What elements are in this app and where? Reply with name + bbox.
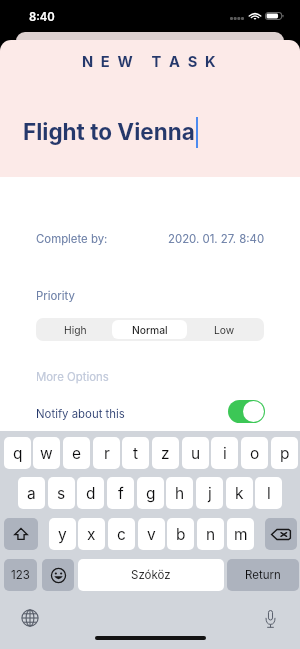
staticText: z <box>161 444 170 463</box>
staticText: l <box>267 484 271 503</box>
button[interactable]: c <box>108 518 135 550</box>
staticText: n <box>206 525 216 544</box>
button[interactable]: p <box>271 437 298 469</box>
button[interactable]: Shift <box>4 518 38 550</box>
button[interactable]: e <box>63 437 90 469</box>
staticText: i <box>223 444 227 463</box>
button[interactable]: t <box>122 437 149 469</box>
staticText: g <box>146 484 156 503</box>
staticText: v <box>147 525 156 544</box>
staticText: x <box>87 525 96 544</box>
button[interactable]: r <box>93 437 120 469</box>
staticText: 123 <box>11 568 30 582</box>
button[interactable]: a <box>18 477 45 509</box>
button[interactable]: High <box>38 320 112 339</box>
button[interactable]: w <box>33 437 60 469</box>
button[interactable]: s <box>48 477 75 509</box>
staticText: d <box>86 484 96 503</box>
button[interactable]: z <box>152 437 179 469</box>
staticText: s <box>57 484 66 503</box>
button[interactable]: o <box>241 437 268 469</box>
button[interactable]: u <box>182 437 209 469</box>
staticText: Low <box>214 324 235 336</box>
staticText: Notify about this <box>36 407 125 421</box>
button[interactable]: i <box>211 437 238 469</box>
staticText: k <box>235 484 244 503</box>
button[interactable]: Szóköz <box>78 559 224 591</box>
button[interactable]: k <box>226 477 253 509</box>
button[interactable]: g <box>137 477 164 509</box>
staticText: High <box>64 324 87 336</box>
button[interactable]: Normal <box>112 320 187 339</box>
staticText: f <box>118 484 124 503</box>
staticText: t <box>133 444 139 463</box>
staticText: p <box>280 444 290 463</box>
staticText: Return <box>245 568 281 582</box>
staticText: y <box>58 525 67 544</box>
staticText: c <box>117 525 126 544</box>
staticText: N E W T A S K <box>82 53 218 71</box>
staticText: Priority <box>36 289 75 303</box>
staticText: Szóköz <box>131 568 171 582</box>
button[interactable]: Change keyboard <box>18 606 42 630</box>
staticText: m <box>234 525 248 544</box>
button[interactable]: y <box>49 518 76 550</box>
staticText: q <box>13 444 23 463</box>
button[interactable]: Return <box>227 559 299 591</box>
button[interactable]: q <box>4 437 31 469</box>
staticText: b <box>176 525 186 544</box>
staticText: More Options <box>36 370 109 384</box>
button[interactable]: Emoji <box>42 559 74 591</box>
staticText: j <box>208 484 212 503</box>
button[interactable]: 123 <box>4 559 37 591</box>
staticText: h <box>175 484 185 503</box>
button[interactable]: b <box>167 518 194 550</box>
button[interactable]: m <box>227 518 254 550</box>
button[interactable]: j <box>196 477 223 509</box>
staticText: Flight to Vienna <box>23 118 195 145</box>
button[interactable]: x <box>78 518 105 550</box>
button[interactable]: n <box>197 518 224 550</box>
staticText: a <box>27 484 36 503</box>
staticText: u <box>191 444 201 463</box>
staticText: 2020. 01. 27. 8:40 <box>168 232 265 246</box>
staticText: 8:40 <box>29 10 55 24</box>
button[interactable]: h <box>166 477 193 509</box>
button[interactable]: d <box>77 477 104 509</box>
button[interactable]: Notify about this toggle <box>228 400 265 423</box>
button[interactable]: l <box>255 477 282 509</box>
button[interactable]: Low <box>187 320 262 339</box>
staticText: r <box>104 444 110 463</box>
staticText: o <box>250 444 260 463</box>
button[interactable]: Dictation <box>258 606 282 630</box>
staticText: w <box>40 444 53 463</box>
button[interactable]: Backspace <box>265 518 297 550</box>
staticText: Complete by: <box>36 232 108 246</box>
staticText: Normal <box>132 324 168 336</box>
button[interactable]: v <box>138 518 165 550</box>
staticText: e <box>72 444 82 463</box>
button[interactable]: f <box>107 477 134 509</box>
